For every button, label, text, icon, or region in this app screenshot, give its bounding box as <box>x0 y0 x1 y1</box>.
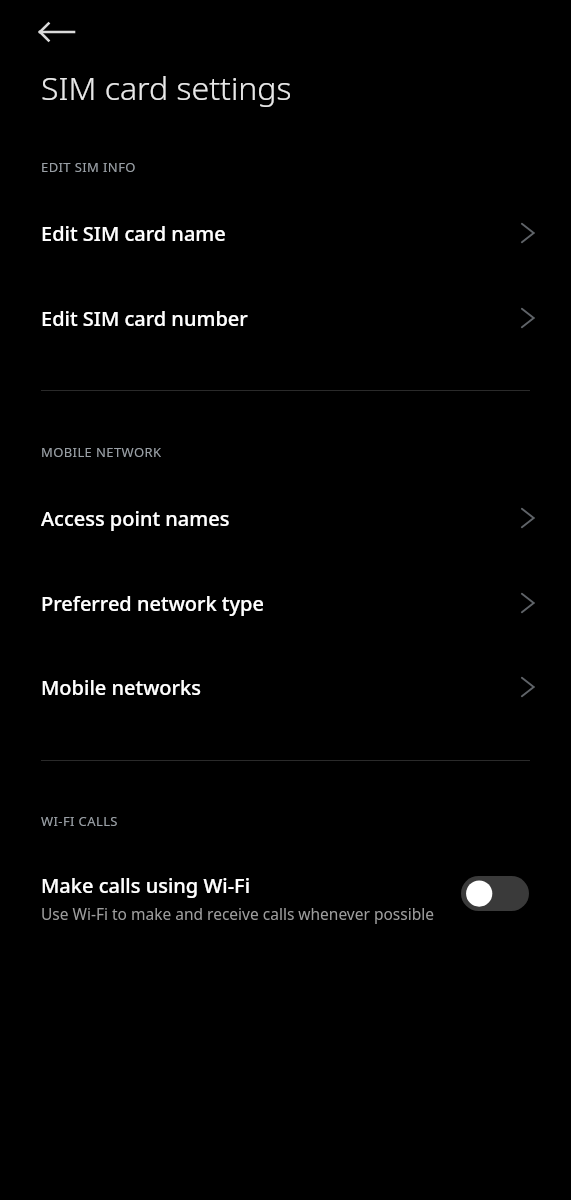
staticText: Edit SIM card number <box>41 305 248 332</box>
staticText: Preferred network type <box>41 590 264 617</box>
button[interactable]: Edit SIM card name <box>0 194 571 272</box>
staticText: SIM card settings <box>41 66 292 110</box>
staticText: Use Wi-Fi to make and receive calls when… <box>41 903 434 924</box>
staticText: WI-FI CALLS <box>41 812 118 830</box>
button[interactable]: Make calls using Wi-Fi <box>0 852 571 936</box>
staticText: EDIT SIM INFO <box>41 158 136 176</box>
staticText: MOBILE NETWORK <box>41 443 162 461</box>
staticText: Make calls using Wi-Fi <box>41 872 251 899</box>
staticText: Mobile networks <box>41 674 201 701</box>
button[interactable]: Mobile networks <box>0 648 571 726</box>
button[interactable]: Preferred network type <box>0 564 571 642</box>
button[interactable]: Make calls using Wi-Fi toggle <box>461 876 529 911</box>
button[interactable]: Edit SIM card number <box>0 279 571 357</box>
staticText: Edit SIM card name <box>41 220 226 247</box>
button[interactable]: Access point names <box>0 479 571 557</box>
button[interactable]: Back <box>25 0 89 50</box>
staticText: Access point names <box>41 505 230 532</box>
